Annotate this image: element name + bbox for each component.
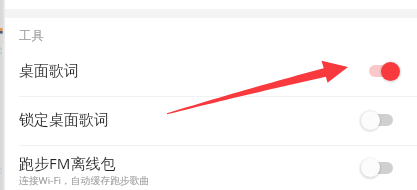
button[interactable]: 桌面歌词 [0, 47, 417, 96]
button[interactable]: Switch off [358, 154, 402, 182]
staticText: 跑步FM离线包 [19, 153, 116, 173]
button[interactable]: 跑步FM离线包 [0, 145, 417, 190]
button[interactable]: Switch off [358, 106, 402, 134]
staticText: 锁定桌面歌词 [19, 111, 109, 130]
staticText: 连接Wi-Fi，自动缓存跑步歌曲 [19, 174, 150, 187]
staticText: 工具 [19, 28, 45, 44]
staticText: 桌面歌词 [19, 62, 79, 81]
button[interactable]: Switch on [364, 57, 408, 85]
button[interactable]: 锁定桌面歌词 [0, 96, 417, 145]
